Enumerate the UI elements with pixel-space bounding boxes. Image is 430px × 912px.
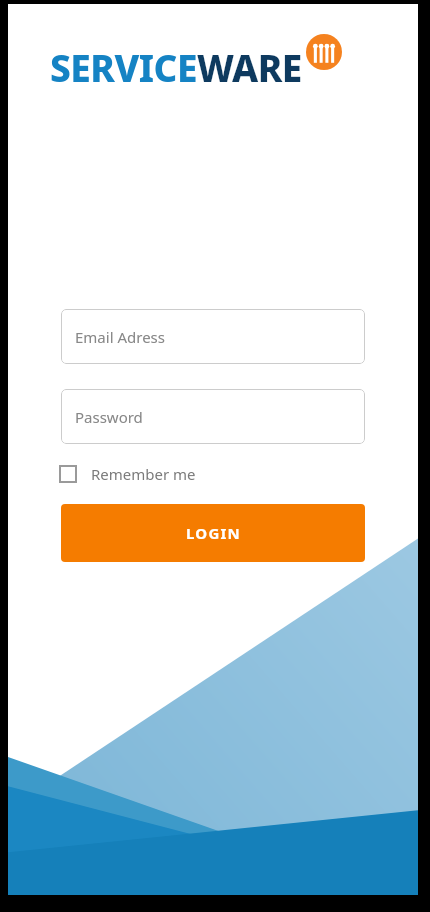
staticText: WARE [197, 42, 302, 92]
button[interactable]: Email Adress [61, 309, 365, 364]
staticText: LOGIN [186, 523, 241, 543]
button[interactable]: Password [61, 389, 365, 444]
staticText: SERVICE [50, 42, 197, 92]
staticText: Remember me [91, 464, 196, 484]
staticText: Password [75, 407, 143, 427]
button[interactable]: LOGIN [61, 504, 365, 562]
button[interactable]: Remember me [55, 460, 200, 488]
staticText: Email Adress [75, 327, 165, 347]
